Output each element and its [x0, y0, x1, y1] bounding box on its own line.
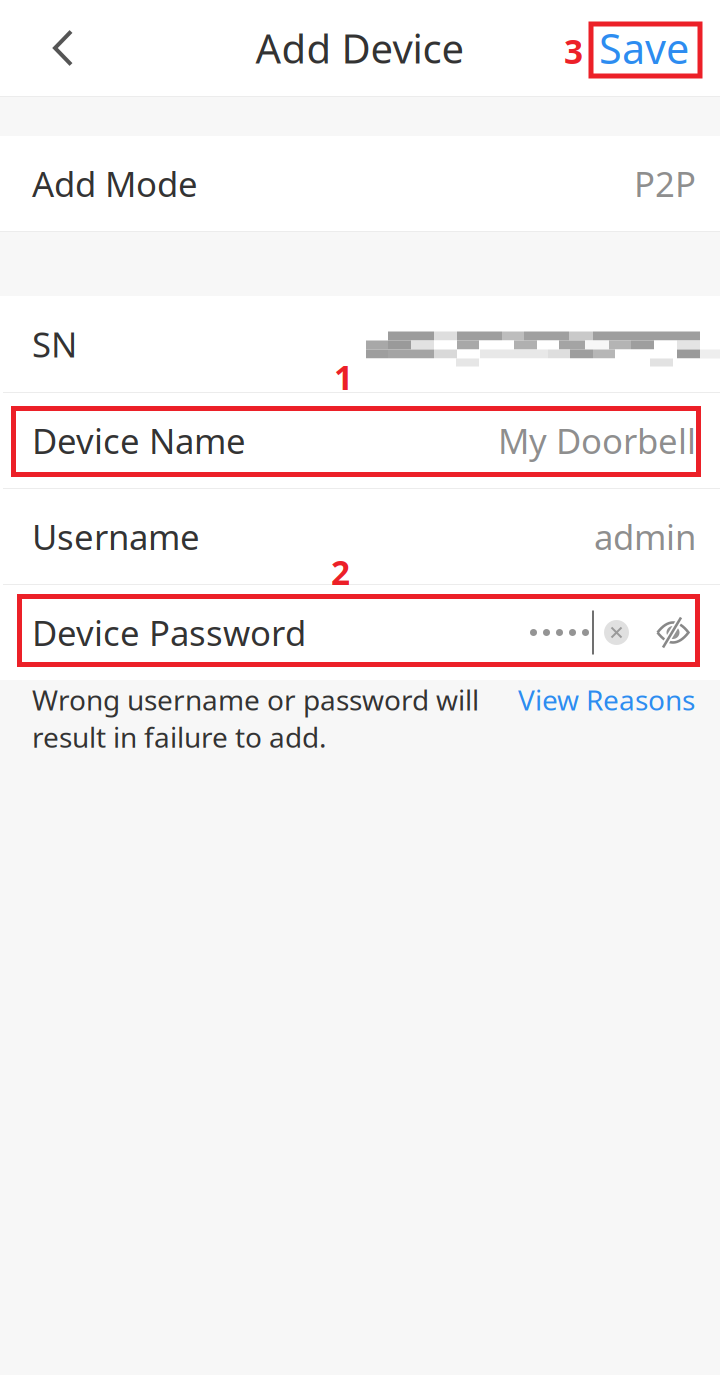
staticText: Save [599, 21, 689, 75]
button[interactable]: Device Name [0, 393, 720, 488]
staticText: admin [594, 513, 696, 559]
button[interactable]: Save [589, 13, 699, 83]
staticText: P2P [634, 160, 696, 206]
button[interactable]: Device Password [0, 585, 720, 680]
staticText: Add Device [255, 21, 464, 74]
staticText: Device Name [32, 417, 246, 463]
staticText: Add Mode [32, 160, 198, 206]
staticText: My Doorbell [498, 417, 696, 463]
staticText: Device Password [32, 609, 306, 655]
staticText: Wrong username or password will result i… [32, 681, 479, 755]
staticText: 2 [331, 550, 350, 594]
button[interactable]: Add Mode [0, 136, 720, 231]
button[interactable]: SN [0, 296, 720, 392]
button[interactable]: Username [0, 489, 720, 584]
staticText: 1 [334, 355, 353, 399]
staticText: SN [32, 321, 77, 367]
button[interactable]: View Reasons [518, 681, 695, 718]
button[interactable]: Back [0, 0, 126, 96]
staticText: 3 [564, 29, 583, 73]
staticText: Username [32, 513, 200, 559]
staticText: View Reasons [518, 681, 695, 718]
